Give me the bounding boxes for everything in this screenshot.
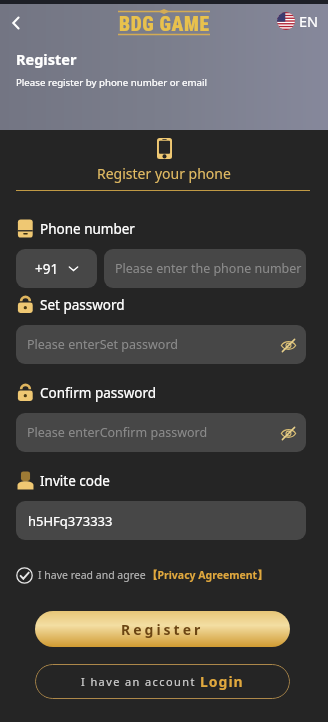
staticText: Set password: [40, 296, 125, 314]
button[interactable]: I have read and agree: [16, 566, 268, 584]
button[interactable]: Please enterConfirm password: [16, 413, 306, 452]
staticText: EN: [299, 11, 319, 31]
staticText: I have an account: [81, 674, 196, 689]
button[interactable]: I have an account: [35, 664, 290, 699]
staticText: Please enterSet password: [27, 336, 178, 353]
staticText: Register: [16, 49, 77, 69]
staticText: Phone number: [40, 220, 135, 238]
button[interactable]: Please enterSet password: [16, 325, 306, 364]
staticText: Please register by phone number or email: [16, 76, 208, 89]
staticText: Login: [200, 672, 244, 691]
button[interactable]: Please enter the phone number: [104, 249, 306, 288]
staticText: Please enterConfirm password: [27, 424, 208, 441]
button[interactable]: Back: [1, 8, 31, 38]
staticText: BDG GAME: [119, 13, 210, 36]
staticText: Register: [121, 620, 204, 639]
staticText: h5HFq373333: [28, 512, 113, 530]
staticText: Register your phone: [97, 164, 231, 183]
staticText: I have read and agree: [38, 568, 146, 582]
button[interactable]: h5HFq373333: [16, 501, 306, 540]
button[interactable]: EN: [277, 11, 319, 31]
button[interactable]: +91: [16, 249, 97, 288]
staticText: Please enter the phone number: [115, 260, 302, 277]
staticText: 【Privacy Agreement】: [147, 568, 268, 582]
staticText: Confirm password: [40, 384, 157, 402]
button[interactable]: Show password: [276, 333, 300, 357]
button[interactable]: Register: [35, 611, 290, 647]
staticText: +91: [35, 260, 59, 278]
staticText: Invite code: [40, 472, 110, 490]
button[interactable]: Show password: [276, 421, 300, 445]
